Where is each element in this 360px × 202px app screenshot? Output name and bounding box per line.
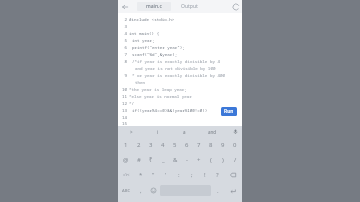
button[interactable]: 6 (181, 137, 193, 152)
button[interactable]: & (169, 152, 181, 167)
staticText: if((year%4==0)&&(year%100!=0)) (132, 108, 208, 114)
button[interactable]: 9 (217, 137, 229, 152)
button[interactable]: / (229, 152, 241, 167)
staticText: main.c (146, 3, 162, 10)
button[interactable]: 5 (169, 137, 181, 152)
staticText: 3 (149, 141, 153, 149)
staticText: 0 (233, 141, 237, 149)
button[interactable]: Enter (224, 182, 242, 199)
staticText: 14 (121, 115, 127, 121)
button[interactable]: _ (157, 152, 169, 167)
button[interactable]: ₹ (145, 152, 157, 167)
staticText: - (186, 156, 188, 164)
button[interactable]: 3 (145, 137, 157, 152)
button[interactable]: i (145, 126, 171, 137)
button[interactable]: 1 (119, 137, 132, 152)
staticText: * or year is exactly divisible by 400 (132, 73, 225, 79)
staticText: 8 (124, 59, 127, 65)
staticText: 4 (161, 141, 165, 149)
button[interactable]: * (135, 167, 147, 182)
button[interactable]: Backspace (224, 167, 242, 182)
staticText: . (217, 187, 219, 195)
staticText: 6 (185, 141, 189, 149)
staticText: ABC (122, 188, 131, 194)
staticText: then (135, 80, 146, 86)
staticText: / (234, 156, 237, 164)
staticText: : (178, 171, 180, 179)
staticText: & (173, 156, 178, 164)
staticText: " (152, 171, 155, 179)
button[interactable]: Refresh (229, 0, 242, 13)
staticText: 12 (121, 101, 127, 107)
button[interactable]: =\< (118, 167, 135, 182)
staticText: ! (204, 171, 206, 179)
button[interactable]: ) (217, 152, 229, 167)
button[interactable]: : (172, 167, 185, 182)
button[interactable]: Run (221, 107, 237, 116)
button[interactable]: ; (185, 167, 198, 182)
staticText: 1 (124, 141, 128, 149)
staticText: a (183, 129, 186, 135)
button[interactable]: # (132, 152, 145, 167)
staticText: 7 (124, 52, 127, 58)
button[interactable]: ( (205, 152, 217, 167)
staticText: int year; (132, 38, 155, 44)
staticText: # (137, 156, 141, 164)
button[interactable]: Emoji (147, 182, 159, 199)
button[interactable]: main.c (137, 2, 171, 11)
staticText: *else year is normal year (129, 94, 192, 100)
button[interactable]: ABC (118, 182, 135, 199)
staticText: and year is not divisible by 100 (135, 66, 216, 72)
staticText: =\< (123, 172, 130, 178)
staticText: Output (181, 3, 198, 10)
staticText: 5 (124, 38, 127, 44)
button[interactable]: " (147, 167, 159, 182)
staticText: > (130, 129, 133, 135)
button[interactable]: a (171, 126, 197, 137)
button[interactable]: @ (119, 152, 132, 167)
staticText: *the year is leap year; (129, 87, 187, 93)
staticText: 10 (121, 87, 127, 93)
button[interactable]: ' (159, 167, 172, 182)
button[interactable]: ! (198, 167, 211, 182)
staticText: */ (129, 101, 135, 107)
button[interactable]: Voice input (228, 126, 242, 137)
staticText: ₹ (149, 156, 153, 164)
staticText: 9 (124, 73, 127, 79)
button[interactable]: 2 (132, 137, 145, 152)
staticText: ( (210, 156, 212, 164)
staticText: 9 (221, 141, 225, 149)
staticText: ' (165, 171, 167, 179)
staticText: 2 (124, 17, 127, 23)
staticText: and (208, 129, 217, 135)
staticText: int main() { (129, 31, 160, 37)
staticText: * (139, 171, 143, 179)
staticText: scanf("%d",&year); (132, 52, 178, 58)
button[interactable]: and (197, 126, 228, 137)
button[interactable]: ? (211, 167, 224, 182)
button[interactable]: 0 (229, 137, 241, 152)
button[interactable]: > (118, 126, 145, 137)
staticText: _ (162, 156, 165, 164)
button[interactable]: 7 (193, 137, 205, 152)
button[interactable]: 4 (157, 137, 169, 152)
staticText: @ (123, 156, 129, 164)
staticText: #include <stdio.h> (129, 17, 175, 23)
button[interactable]: Back (118, 0, 131, 13)
button[interactable]: Output (175, 2, 203, 11)
staticText: , (140, 187, 142, 195)
button[interactable]: 8 (205, 137, 217, 152)
staticText: + (197, 156, 201, 164)
button[interactable]: , (135, 182, 147, 199)
button[interactable]: + (193, 152, 205, 167)
staticText: printf("enter year"); (132, 45, 185, 51)
staticText: Run (224, 108, 234, 115)
staticText: 11 (121, 94, 127, 100)
staticText: ? (216, 171, 219, 179)
staticText: 6 (124, 45, 127, 51)
staticText: 2 (137, 141, 141, 149)
staticText: /*if year is exactly divisible by 4 (132, 59, 220, 65)
